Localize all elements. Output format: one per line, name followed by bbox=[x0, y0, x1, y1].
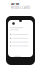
staticText: LATEST bbox=[11, 2, 20, 6]
staticText: MODEL CARD bbox=[11, 6, 30, 9]
